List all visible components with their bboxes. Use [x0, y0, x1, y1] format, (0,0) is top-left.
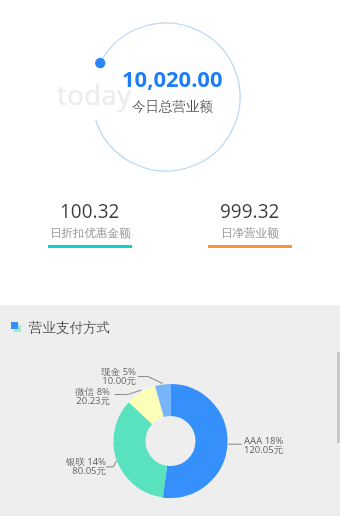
staticText: AAA 18% 120.05元	[244, 434, 324, 456]
staticText: 银联 14% 80.05元	[26, 455, 106, 477]
staticText: 现金 5% 10.00元	[56, 365, 136, 387]
staticText: 日净营业额	[221, 226, 279, 240]
staticText: 100.32	[60, 198, 120, 224]
button[interactable]: 营业支付方式	[11, 305, 340, 350]
staticText: today	[57, 75, 132, 113]
staticText: 日折扣优惠金额	[50, 226, 131, 240]
staticText: 微信 8% 20.23元	[30, 385, 110, 407]
staticText: 10,020.00	[122, 63, 223, 93]
button[interactable]: 999.32	[170, 198, 330, 248]
staticText: 营业支付方式	[29, 319, 110, 336]
staticText: 999.32	[220, 198, 280, 224]
staticText: 今日总营业额	[132, 98, 213, 115]
button[interactable]: 100.32	[10, 198, 170, 248]
